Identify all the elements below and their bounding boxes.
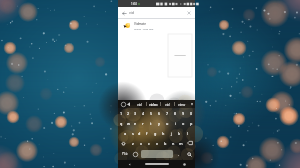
button[interactable]: 8 bbox=[171, 108, 179, 118]
button[interactable]: o bbox=[179, 118, 187, 128]
button[interactable]: l bbox=[183, 128, 191, 138]
staticText: video bbox=[149, 102, 158, 107]
staticText: k bbox=[178, 131, 181, 136]
staticText: 8 bbox=[174, 111, 177, 116]
button[interactable]: z bbox=[129, 138, 137, 148]
button[interactable]: y bbox=[155, 118, 163, 128]
staticText: vid bbox=[129, 10, 134, 15]
staticText: b bbox=[164, 141, 167, 146]
button[interactable]: Voice input bbox=[120, 101, 126, 107]
button[interactable]: More suggestions bbox=[189, 101, 195, 107]
staticText: h bbox=[162, 131, 165, 136]
staticText: 3 bbox=[134, 111, 137, 116]
button[interactable]: GIF bbox=[126, 101, 132, 107]
button[interactable]: ?1① bbox=[118, 148, 131, 160]
button[interactable]: view bbox=[175, 100, 188, 108]
button[interactable]: Shift bbox=[118, 138, 129, 148]
staticText: l bbox=[187, 131, 188, 136]
staticText: r bbox=[142, 121, 144, 126]
button[interactable]: Backspace bbox=[185, 138, 195, 148]
button[interactable]: r bbox=[139, 118, 147, 128]
staticText: s bbox=[132, 131, 134, 136]
button[interactable]: g bbox=[151, 128, 159, 138]
staticText: 1 bbox=[120, 111, 123, 116]
staticText: . bbox=[178, 152, 180, 157]
staticText: 0 bbox=[190, 111, 193, 116]
staticText: q bbox=[120, 121, 123, 126]
button[interactable]: s bbox=[129, 128, 136, 138]
button[interactable]: i bbox=[171, 118, 179, 128]
staticText: c bbox=[148, 141, 150, 146]
button[interactable]: 4 bbox=[139, 108, 147, 118]
button[interactable]: q bbox=[118, 118, 125, 128]
staticText: e bbox=[134, 121, 137, 126]
button[interactable]: b bbox=[161, 138, 169, 148]
button[interactable]: a bbox=[122, 128, 129, 138]
staticText: 5 bbox=[150, 111, 153, 116]
button[interactable]: 9 bbox=[179, 108, 187, 118]
button[interactable]: c bbox=[145, 138, 153, 148]
staticText: o bbox=[182, 121, 185, 126]
button[interactable]: d bbox=[136, 128, 143, 138]
staticText: u bbox=[166, 121, 169, 126]
staticText: 1:04 bbox=[131, 2, 137, 6]
staticText: view bbox=[178, 102, 186, 107]
staticText: Install · Free app bbox=[134, 27, 154, 30]
staticText: v bbox=[156, 141, 158, 146]
button[interactable]: Search bbox=[183, 148, 195, 160]
button[interactable]: Home bbox=[140, 160, 173, 168]
button[interactable]: m bbox=[177, 138, 185, 148]
staticText: y bbox=[158, 121, 160, 126]
staticText: 6 bbox=[158, 111, 161, 116]
staticText: w bbox=[127, 121, 130, 126]
button[interactable]: f bbox=[143, 128, 151, 138]
button[interactable]: j bbox=[167, 128, 175, 138]
button[interactable]: w bbox=[125, 118, 132, 128]
staticText: x bbox=[140, 141, 143, 146]
staticText: j bbox=[171, 131, 172, 136]
button[interactable]: 5 bbox=[147, 108, 155, 118]
staticText: t bbox=[150, 121, 152, 126]
staticText: ▼ bbox=[191, 103, 193, 106]
button[interactable]: Clear search bbox=[185, 9, 193, 17]
button[interactable]: vid bbox=[161, 100, 174, 108]
staticText: p bbox=[190, 121, 193, 126]
staticText: vid bbox=[137, 102, 142, 107]
staticText: m bbox=[179, 141, 183, 146]
button[interactable]: 2 bbox=[125, 108, 132, 118]
staticText: n bbox=[172, 141, 175, 146]
button[interactable]: Vidmate bbox=[118, 19, 195, 33]
button[interactable]: 0 bbox=[187, 108, 195, 118]
button[interactable]: v bbox=[153, 138, 161, 148]
button[interactable]: Back bbox=[118, 160, 140, 168]
staticText: 2 bbox=[127, 111, 130, 116]
staticText: a bbox=[124, 131, 127, 136]
button[interactable]: Space bbox=[141, 150, 173, 158]
button[interactable]: Emoji bbox=[131, 148, 140, 160]
staticText: vid bbox=[165, 102, 170, 107]
button[interactable]: n bbox=[169, 138, 177, 148]
staticText: i bbox=[175, 121, 176, 126]
button[interactable]: . bbox=[174, 148, 183, 160]
button[interactable]: k bbox=[175, 128, 183, 138]
staticText: ◀▌ bbox=[127, 103, 131, 106]
button[interactable]: vid bbox=[132, 100, 146, 108]
staticText: ?1① bbox=[122, 152, 128, 156]
button[interactable]: 1 bbox=[118, 108, 125, 118]
button[interactable]: Back bbox=[118, 7, 195, 18]
button[interactable]: u bbox=[163, 118, 171, 128]
button[interactable]: 7 bbox=[163, 108, 171, 118]
button[interactable]: h bbox=[159, 128, 167, 138]
staticText: 7 bbox=[166, 111, 169, 116]
staticText: z bbox=[132, 141, 134, 146]
button[interactable]: 3 bbox=[132, 108, 139, 118]
button[interactable]: x bbox=[137, 138, 145, 148]
button[interactable]: video bbox=[147, 100, 160, 108]
button[interactable]: t bbox=[147, 118, 155, 128]
button[interactable]: e bbox=[132, 118, 139, 128]
button[interactable]: Recents bbox=[173, 160, 195, 168]
button[interactable]: 6 bbox=[155, 108, 163, 118]
button[interactable]: p bbox=[187, 118, 195, 128]
staticText: 4 bbox=[142, 111, 145, 116]
button[interactable]: Back bbox=[120, 9, 128, 17]
